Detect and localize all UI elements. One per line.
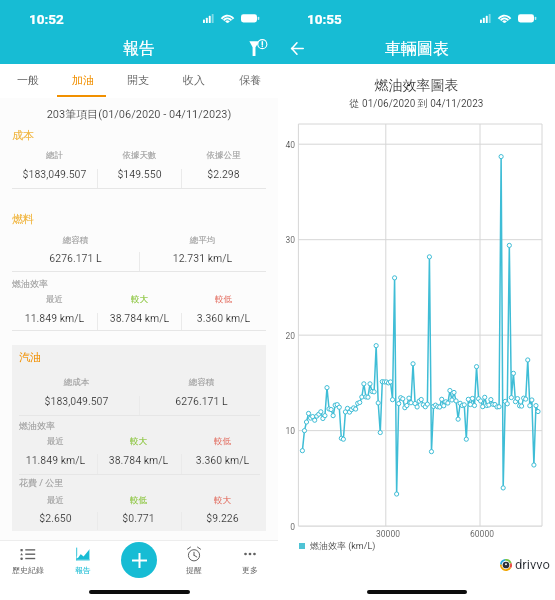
staticText: 收入: [183, 73, 205, 87]
staticText: 10:52: [29, 11, 64, 26]
button[interactable]: 開支: [110, 64, 166, 98]
staticText: 11.849 km/L: [12, 312, 97, 324]
staticText: $9.226: [181, 512, 264, 524]
staticText: 總成本: [14, 377, 139, 388]
staticText: 燃油效率: [12, 278, 48, 289]
staticText: 20: [279, 331, 295, 341]
staticText: 0: [279, 522, 295, 532]
staticText: 38.784 km/L: [97, 454, 180, 466]
staticText: 總容積: [12, 235, 139, 246]
staticText: 3.360 km/L: [181, 312, 266, 324]
staticText: 最近: [14, 495, 97, 506]
staticText: 更多: [242, 565, 258, 575]
staticText: 一般: [17, 73, 39, 87]
staticText: 203筆項目(01/06/2020 - 04/11/2023): [0, 107, 278, 121]
staticText: 從 01/06/2020 到 04/11/2023: [278, 97, 555, 110]
staticText: drivvo: [515, 557, 550, 572]
staticText: 歷史紀錄: [12, 565, 44, 575]
staticText: 10: [279, 426, 295, 436]
button[interactable]: 加油: [55, 64, 110, 98]
staticText: 最近: [12, 294, 97, 305]
staticText: $149.550: [97, 168, 182, 180]
staticText: $183,049.507: [12, 168, 97, 180]
button[interactable]: 報告: [55, 546, 110, 584]
button[interactable]: 一般: [0, 64, 55, 98]
staticText: 總容積: [139, 377, 264, 388]
staticText: 12.731 km/L: [139, 252, 266, 264]
staticText: 10:55: [307, 11, 342, 26]
staticText: 燃油效率圖表: [278, 77, 555, 95]
staticText: 最近: [14, 436, 97, 447]
button[interactable]: 提醒: [166, 546, 222, 584]
staticText: 總平均: [139, 235, 266, 246]
staticText: 較低: [181, 294, 266, 305]
staticText: 30000: [370, 529, 406, 539]
staticText: 依據公里: [181, 150, 266, 161]
staticText: 較低: [181, 436, 264, 447]
staticText: 11.849 km/L: [14, 454, 97, 466]
staticText: 較大: [97, 294, 182, 305]
staticText: 花費 / 公里: [19, 477, 64, 488]
staticText: $0.771: [97, 512, 180, 524]
button[interactable]: Back: [283, 34, 311, 62]
staticText: 報告: [123, 39, 155, 59]
staticText: 40: [279, 140, 295, 150]
button[interactable]: Filter: [243, 33, 273, 63]
staticText: 6276.171 L: [139, 395, 264, 407]
staticText: 開支: [127, 73, 149, 87]
staticText: $2.650: [14, 512, 97, 524]
staticText: 30: [279, 235, 295, 245]
staticText: $2.298: [181, 168, 266, 180]
staticText: 燃料: [12, 212, 34, 226]
staticText: 成本: [12, 128, 34, 142]
staticText: 車輛圖表: [385, 39, 449, 59]
staticText: 較低: [97, 495, 180, 506]
staticText: 加油: [72, 73, 94, 87]
staticText: 38.784 km/L: [97, 312, 182, 324]
staticText: 60000: [464, 529, 500, 539]
staticText: 燃油效率 (km/L): [310, 540, 376, 551]
staticText: 提醒: [186, 565, 202, 575]
button[interactable]: 收入: [166, 64, 222, 98]
staticText: 汽油: [19, 350, 41, 364]
staticText: 3.360 km/L: [181, 454, 264, 466]
staticText: 保養: [239, 73, 261, 87]
button[interactable]: 歷史紀錄: [0, 546, 55, 584]
button[interactable]: Add: [121, 542, 157, 578]
staticText: 燃油效率: [19, 420, 55, 431]
button[interactable]: 保養: [222, 64, 278, 98]
staticText: 報告: [75, 565, 91, 575]
staticText: 6276.171 L: [12, 252, 139, 264]
staticText: 較大: [181, 495, 264, 506]
staticText: 依據天數: [97, 150, 182, 161]
staticText: 較大: [97, 436, 180, 447]
staticText: 總計: [12, 150, 97, 161]
button[interactable]: 更多: [222, 546, 278, 584]
staticText: $183,049.507: [14, 395, 139, 407]
